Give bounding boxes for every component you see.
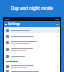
button[interactable] bbox=[4, 63, 60, 70]
button[interactable] bbox=[4, 33, 60, 39]
button[interactable] bbox=[4, 27, 60, 33]
button[interactable] bbox=[4, 46, 60, 53]
button[interactable]: Back bbox=[5, 23, 7, 25]
staticText: Day and night mode bbox=[11, 5, 53, 11]
button[interactable] bbox=[4, 39, 60, 46]
button[interactable] bbox=[4, 53, 60, 59]
button[interactable] bbox=[4, 70, 60, 72]
staticText: Settings bbox=[8, 22, 21, 26]
